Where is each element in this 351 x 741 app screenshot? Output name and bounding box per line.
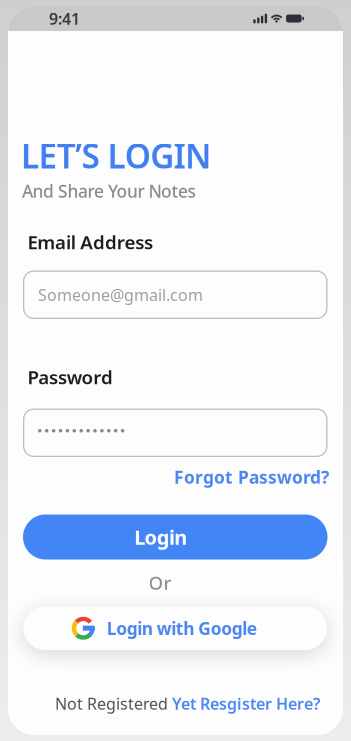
staticText: LET’S LOGIN: [21, 133, 211, 178]
button[interactable]: Forgot Password?: [174, 465, 329, 488]
button[interactable]: [23, 408, 327, 457]
staticText: Not Registered: [55, 693, 168, 714]
staticText: 9:41: [49, 8, 80, 29]
button[interactable]: Someone@gmail.com: [23, 270, 327, 319]
staticText: Email Address: [27, 229, 153, 254]
staticText: Password: [27, 364, 113, 389]
button[interactable]: Not Registered: [55, 693, 320, 714]
staticText: Login with Google: [107, 617, 257, 640]
staticText: Login: [134, 524, 187, 550]
staticText: Someone@gmail.com: [38, 284, 203, 305]
staticText: Forgot Password?: [174, 465, 329, 488]
button[interactable]: Login with Google: [23, 606, 327, 650]
staticText: And Share Your Notes: [22, 179, 195, 202]
staticText: Or: [148, 570, 171, 595]
staticText: Yet Resgister Here?: [172, 693, 320, 714]
button[interactable]: Login: [23, 514, 327, 559]
